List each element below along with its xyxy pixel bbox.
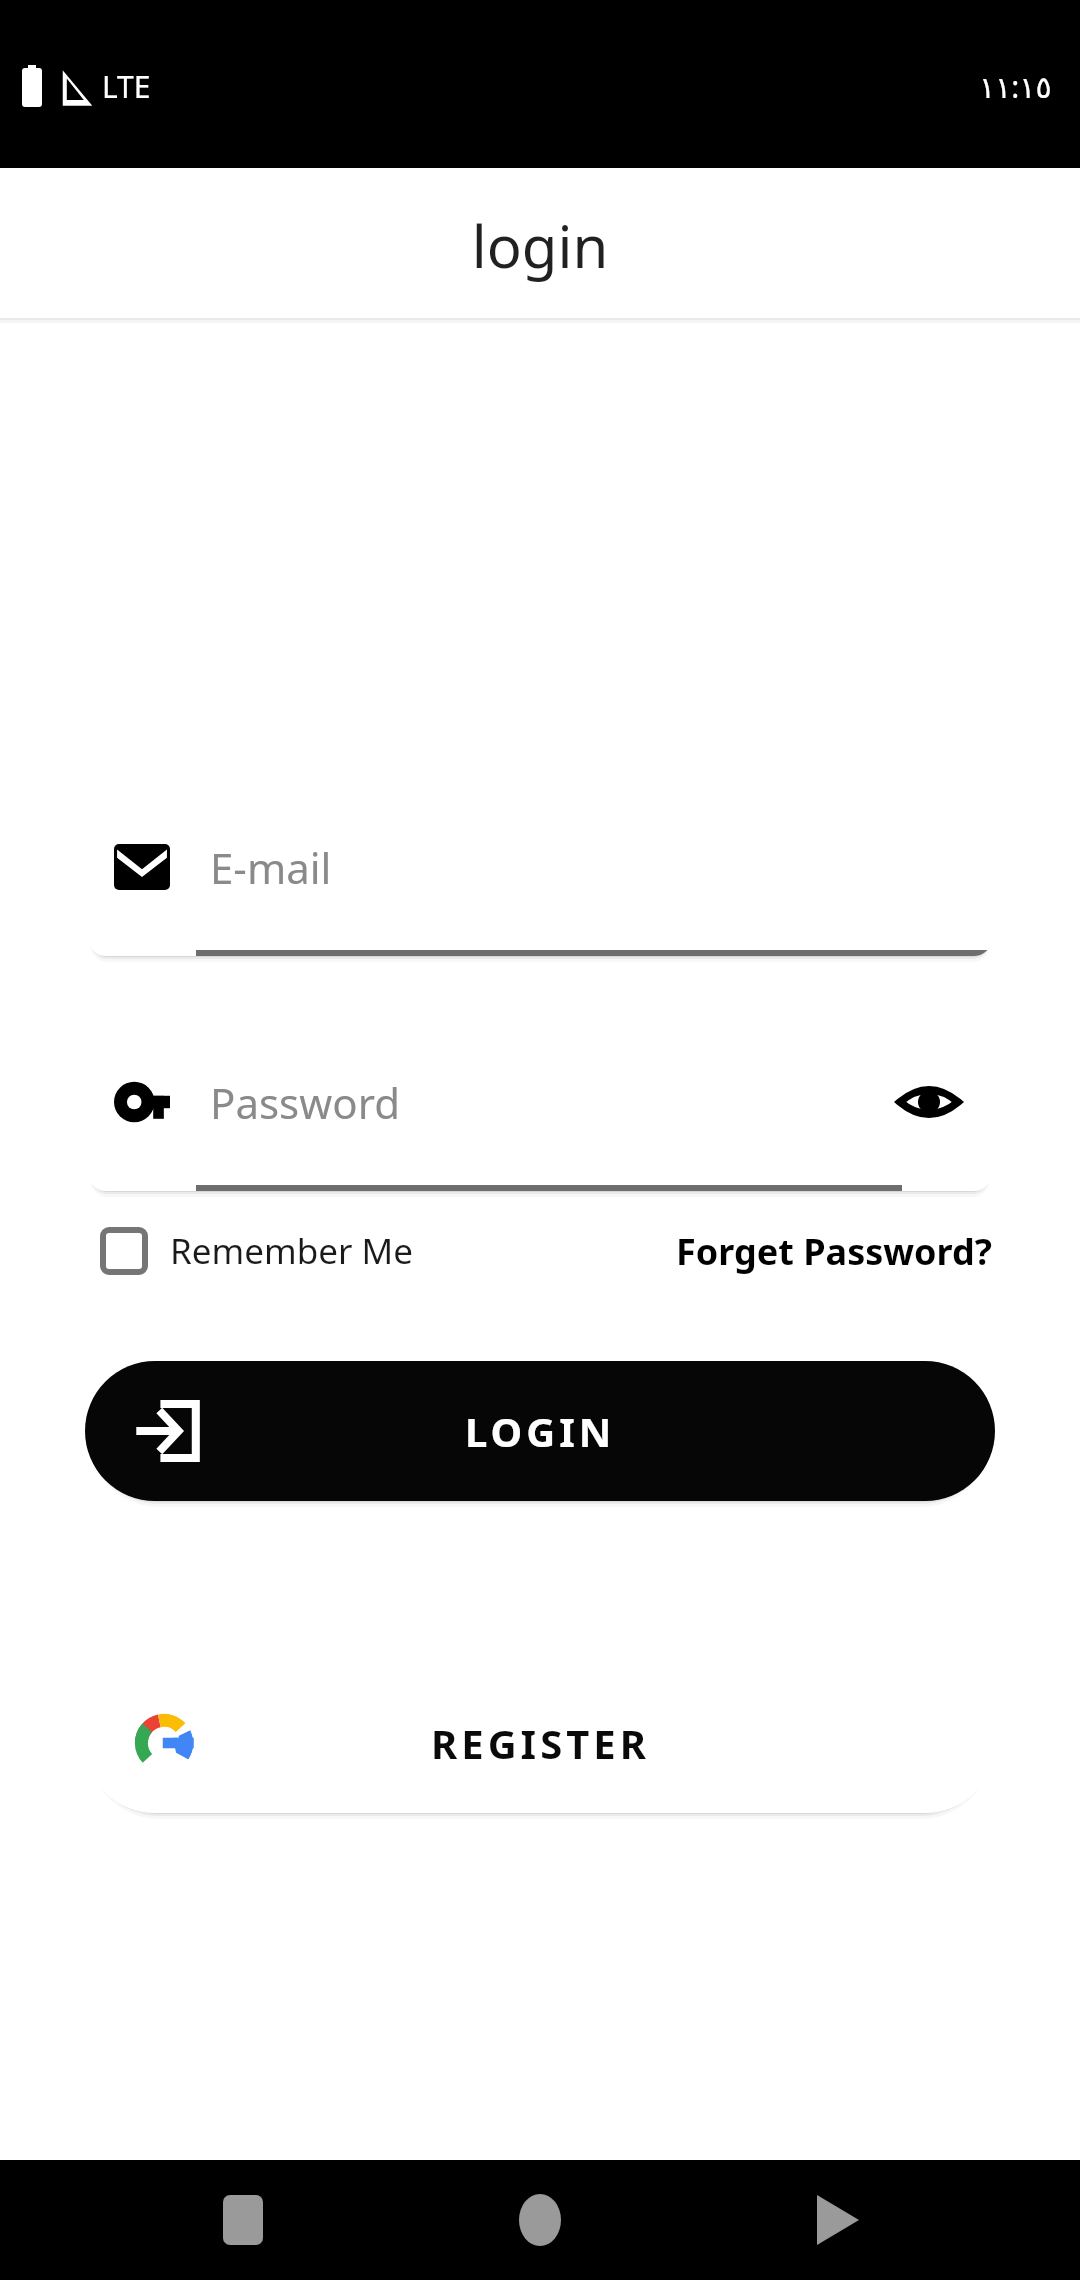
button[interactable]: E-mail — [88, 778, 992, 956]
staticText: REGISTER — [431, 1716, 650, 1770]
staticText: Password — [210, 1074, 400, 1131]
button[interactable]: Home — [485, 2165, 595, 2275]
button[interactable]: Password — [88, 1013, 992, 1191]
staticText: E-mail — [210, 839, 332, 896]
staticText: LTE — [102, 66, 151, 107]
staticText: LOGIN — [465, 1404, 616, 1458]
button[interactable]: Recents — [188, 2165, 298, 2275]
staticText: ١١:١٥ — [979, 66, 1052, 107]
button[interactable]: LOGIN — [85, 1361, 995, 1501]
button[interactable]: REGISTER — [85, 1673, 995, 1813]
staticText: login — [0, 206, 1080, 285]
staticText: Remember Me — [170, 1227, 414, 1275]
button[interactable]: Forget Password? — [676, 1221, 992, 1282]
button[interactable]: Back — [783, 2165, 893, 2275]
button[interactable]: Remember Me — [100, 1221, 414, 1281]
button[interactable]: Show password — [886, 1059, 972, 1145]
